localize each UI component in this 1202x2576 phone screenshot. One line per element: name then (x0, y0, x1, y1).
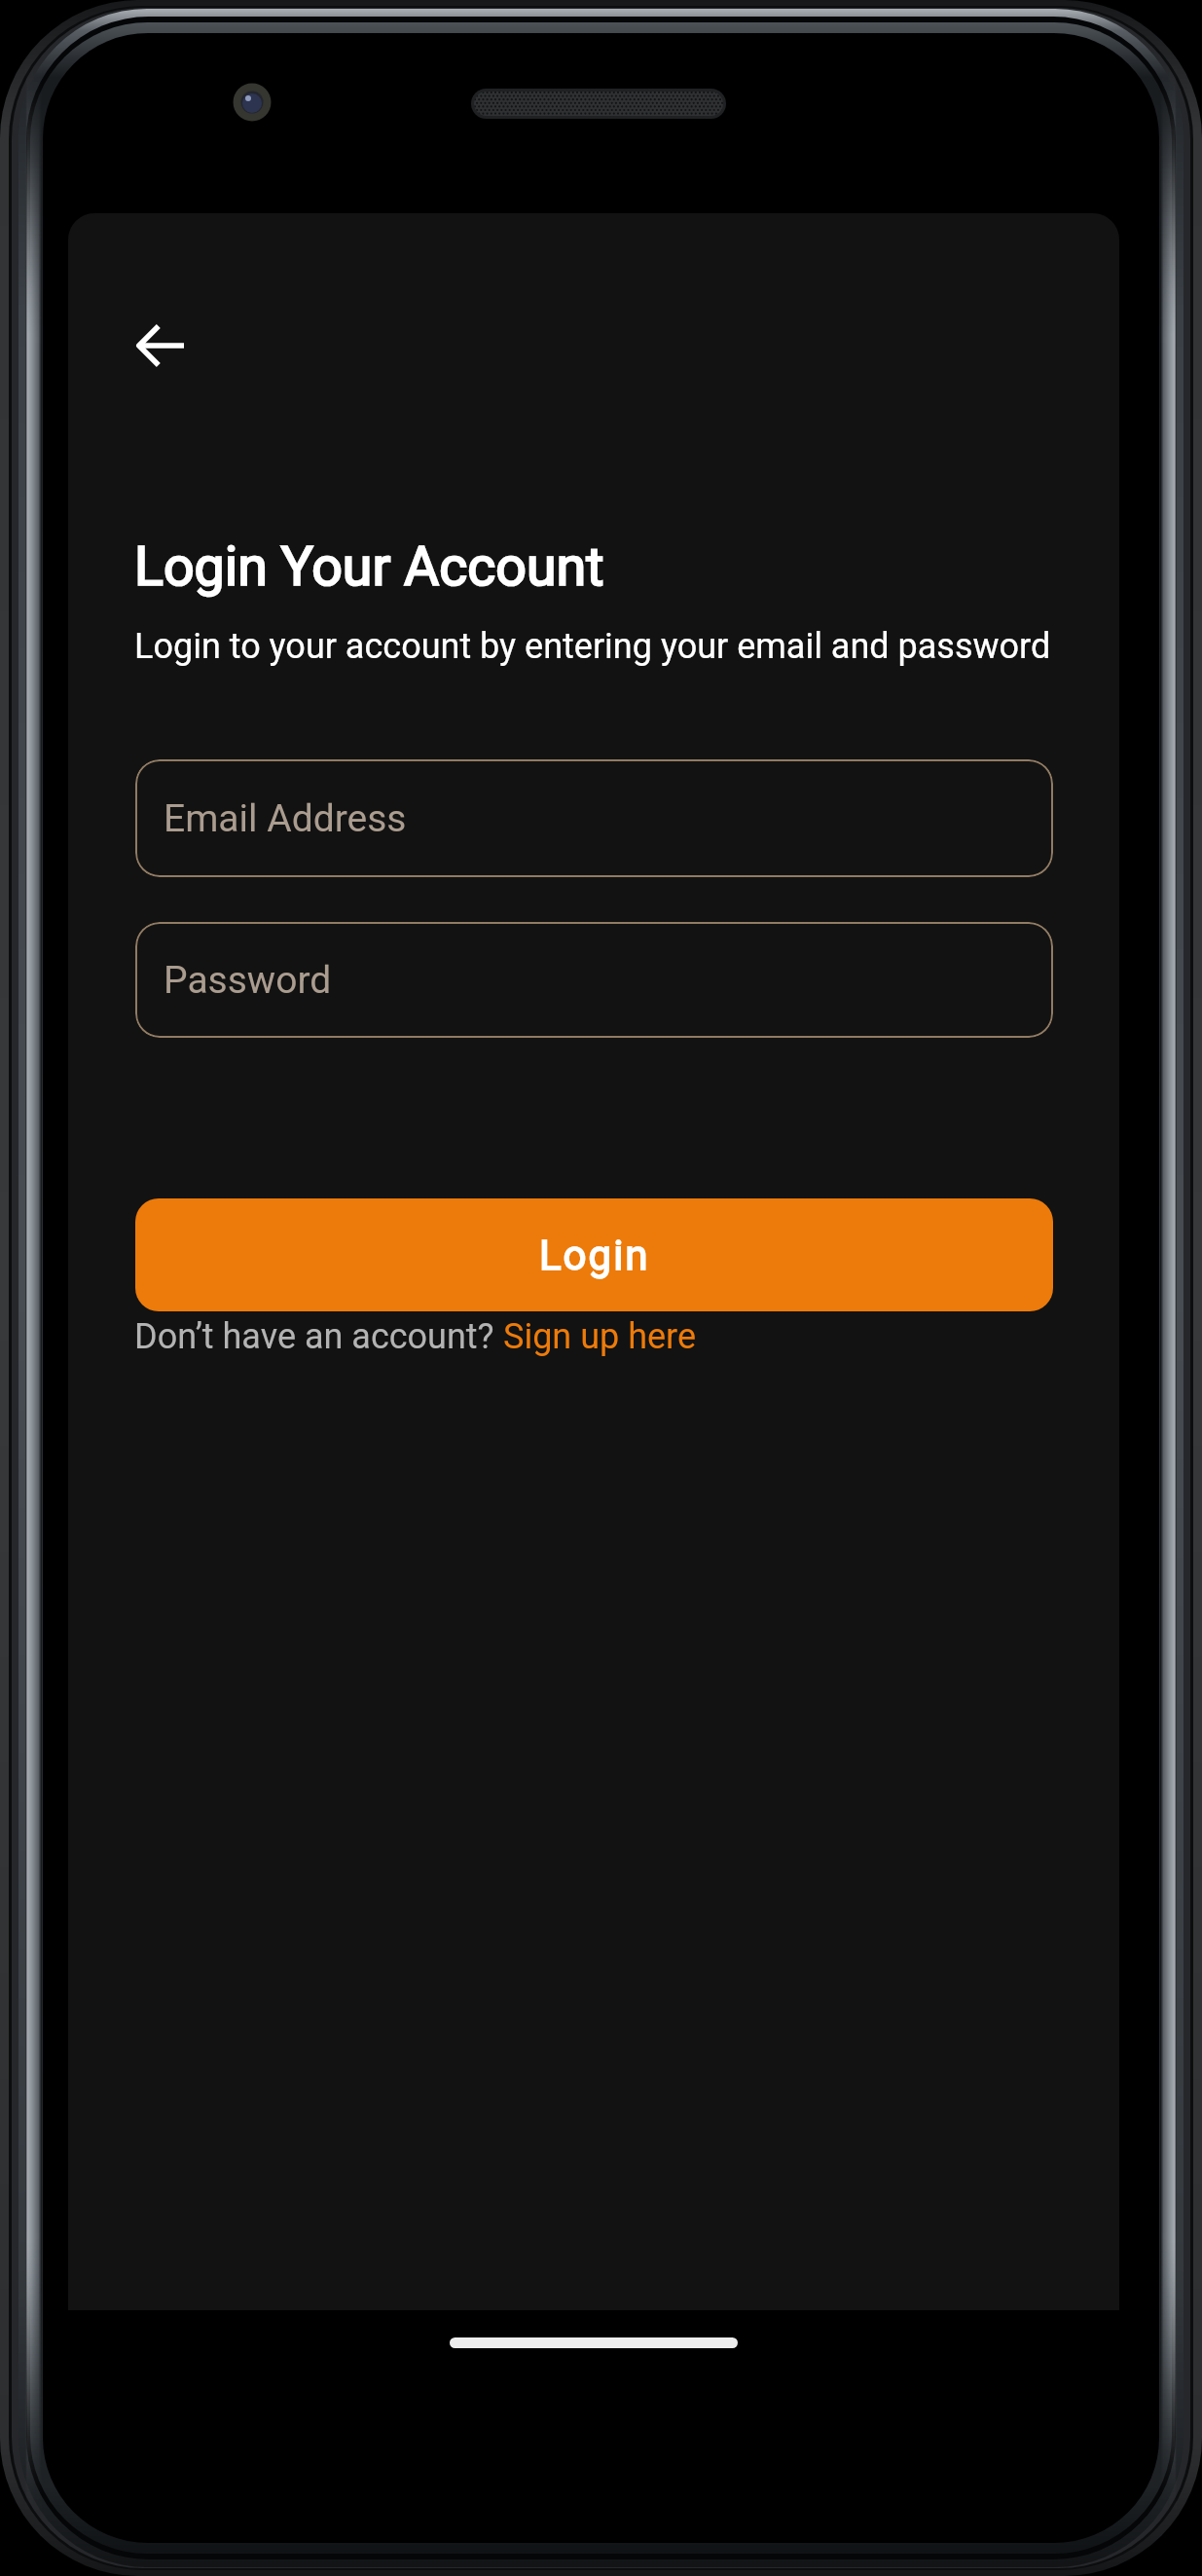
button[interactable]: Don’t have an account? (134, 1316, 697, 1357)
staticText: Login Your Account (134, 535, 604, 599)
staticText: Login (539, 1232, 650, 1279)
staticText: Don’t have an account? (134, 1316, 503, 1357)
button[interactable]: Back (114, 299, 207, 392)
button[interactable]: Email Address (135, 759, 1053, 877)
button[interactable]: Login (135, 1198, 1053, 1311)
button[interactable]: Password (135, 922, 1053, 1038)
staticText: Sign up here (503, 1316, 697, 1357)
staticText: Password (164, 958, 332, 1003)
staticText: Login to your account by entering your e… (134, 626, 1051, 667)
staticText: Email Address (164, 796, 407, 841)
